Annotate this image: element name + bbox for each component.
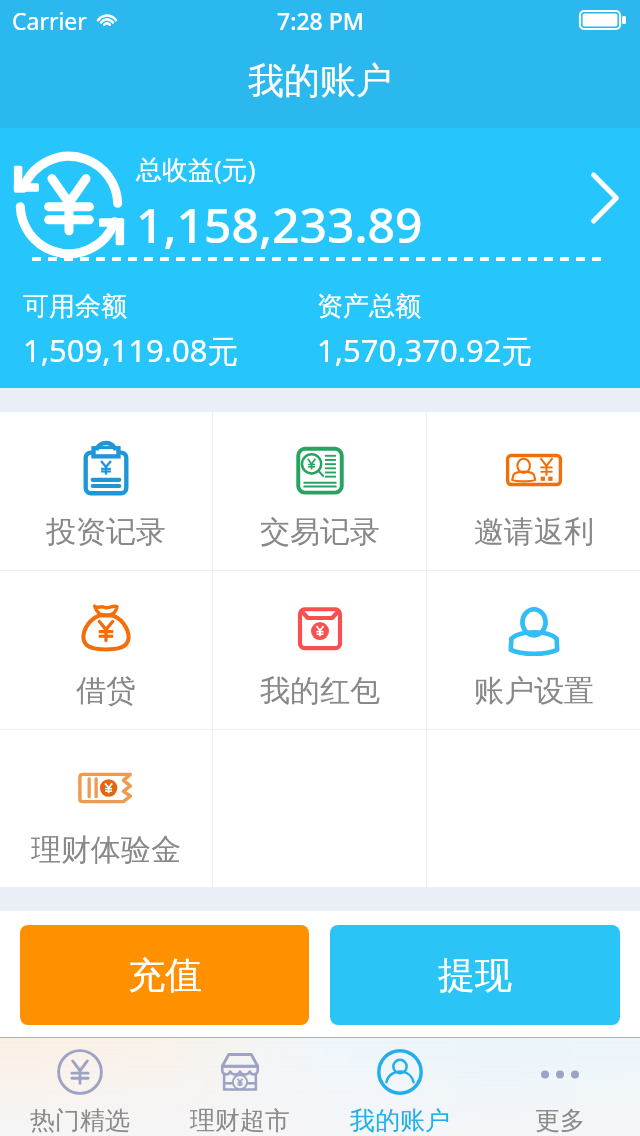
staticText: 交易记录 [260,513,380,551]
staticText: 借贷 [76,672,136,710]
staticText: 7:28 PM [277,5,364,36]
staticText: 可用余额 [23,290,127,323]
staticText: 更多 [535,1105,585,1136]
staticText: 总收益(元) [136,151,256,187]
staticText: 热门精选 [30,1105,130,1136]
button[interactable]: 投资记录 [0,412,212,570]
button[interactable]: 更多 [480,1037,640,1136]
staticText: 我的账户 [248,58,392,103]
staticText: Carrier [12,5,87,36]
button[interactable]: 理财体验金 [0,730,212,887]
button[interactable]: 充值 [20,925,309,1025]
staticText: 1,158,233.89 [136,192,423,257]
button[interactable]: 邀请返利 [427,412,640,570]
staticText: 投资记录 [46,513,166,551]
staticText: 理财超市 [190,1105,290,1136]
staticText: 资产总额 [317,290,421,323]
button[interactable]: 理财超市 [160,1037,320,1136]
button[interactable]: 提现 [330,925,620,1025]
staticText: 理财体验金 [31,831,181,869]
button[interactable]: 交易记录 [213,412,426,570]
button[interactable]: 账户设置 [427,571,640,729]
staticText: 邀请返利 [474,513,594,551]
button[interactable]: 我的红包 [213,571,426,729]
button[interactable]: 我的账户 [320,1037,480,1136]
other: 查看详情 [590,175,620,221]
button[interactable]: 总收益(元) [0,128,640,388]
staticText: 提现 [438,952,512,999]
button[interactable]: 热门精选 [0,1037,160,1136]
staticText: 账户设置 [474,672,594,710]
staticText: 充值 [128,952,202,999]
staticText: 我的红包 [260,672,380,710]
staticText: 1,509,119.08元 [23,329,239,371]
button[interactable]: 借贷 [0,571,212,729]
staticText: 1,570,370.92元 [317,329,533,371]
staticText: 我的账户 [350,1105,450,1136]
